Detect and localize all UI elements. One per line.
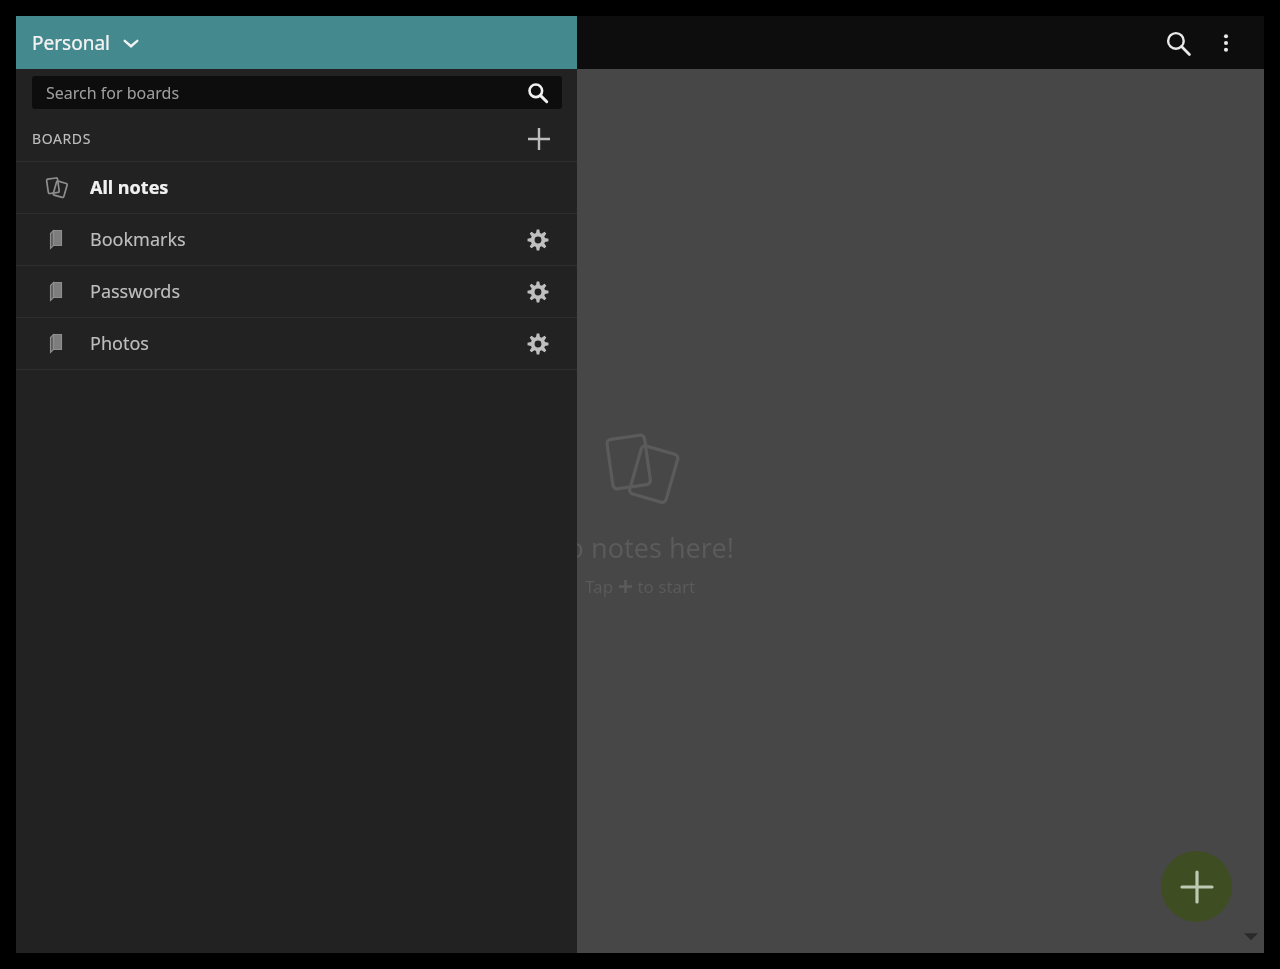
staticText: No notes here! xyxy=(547,529,734,566)
button[interactable]: All notes xyxy=(16,162,577,213)
staticText: All notes xyxy=(90,175,169,200)
button[interactable]: Personal xyxy=(16,16,577,69)
button[interactable]: Board settings xyxy=(519,325,557,363)
button[interactable]: Add board xyxy=(521,121,557,157)
button[interactable]: Board settings xyxy=(519,273,557,311)
button[interactable]: Search for boards xyxy=(32,76,562,109)
staticText: Personal xyxy=(32,30,110,56)
staticText: BOARDS xyxy=(32,129,91,148)
staticText: Search for boards xyxy=(46,82,180,104)
staticText: Tap xyxy=(585,575,618,598)
button[interactable]: Passwords xyxy=(16,266,577,317)
button[interactable]: New note xyxy=(1161,851,1232,922)
staticText: Photos xyxy=(90,331,149,356)
staticText: Bookmarks xyxy=(90,227,186,252)
button[interactable]: More options xyxy=(1202,19,1250,67)
button[interactable]: Photos xyxy=(16,318,577,369)
staticText: to start xyxy=(633,575,696,598)
staticText: Passwords xyxy=(90,279,181,304)
button[interactable]: Bookmarks xyxy=(16,214,577,265)
button[interactable]: Board settings xyxy=(519,221,557,259)
button[interactable]: Search xyxy=(1154,19,1202,67)
